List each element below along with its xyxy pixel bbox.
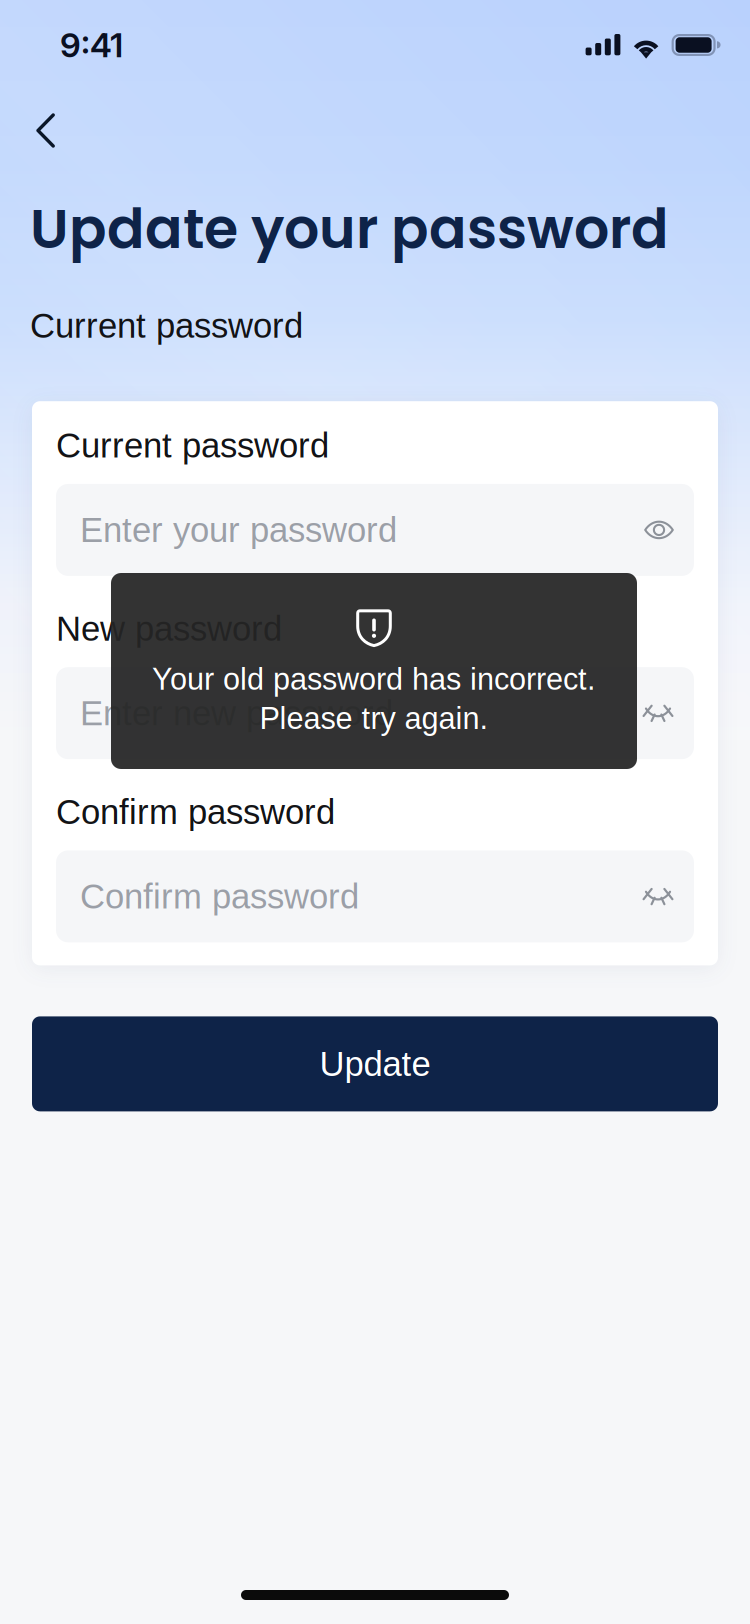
button[interactable]: Back	[0, 90, 81, 162]
staticText: Confirm password	[80, 877, 359, 916]
staticText: Your old password has incorrect.	[152, 662, 596, 696]
staticText: Current password	[56, 426, 329, 465]
staticText: Update	[319, 1044, 430, 1083]
staticText: Update your password	[30, 190, 669, 267]
button[interactable]: Update	[32, 1016, 718, 1111]
staticText: Enter new password	[80, 694, 393, 732]
button[interactable]: Confirm password	[56, 850, 694, 942]
button[interactable]: Enter new password	[56, 667, 694, 759]
staticText: New password	[56, 609, 282, 648]
staticText: Current password	[30, 306, 303, 345]
staticText: 9:41	[60, 25, 123, 65]
staticText: Confirm password	[56, 793, 335, 831]
staticText: Please try again.	[259, 701, 488, 736]
staticText: Enter your password	[80, 511, 397, 549]
button[interactable]: Enter your password	[56, 484, 694, 576]
